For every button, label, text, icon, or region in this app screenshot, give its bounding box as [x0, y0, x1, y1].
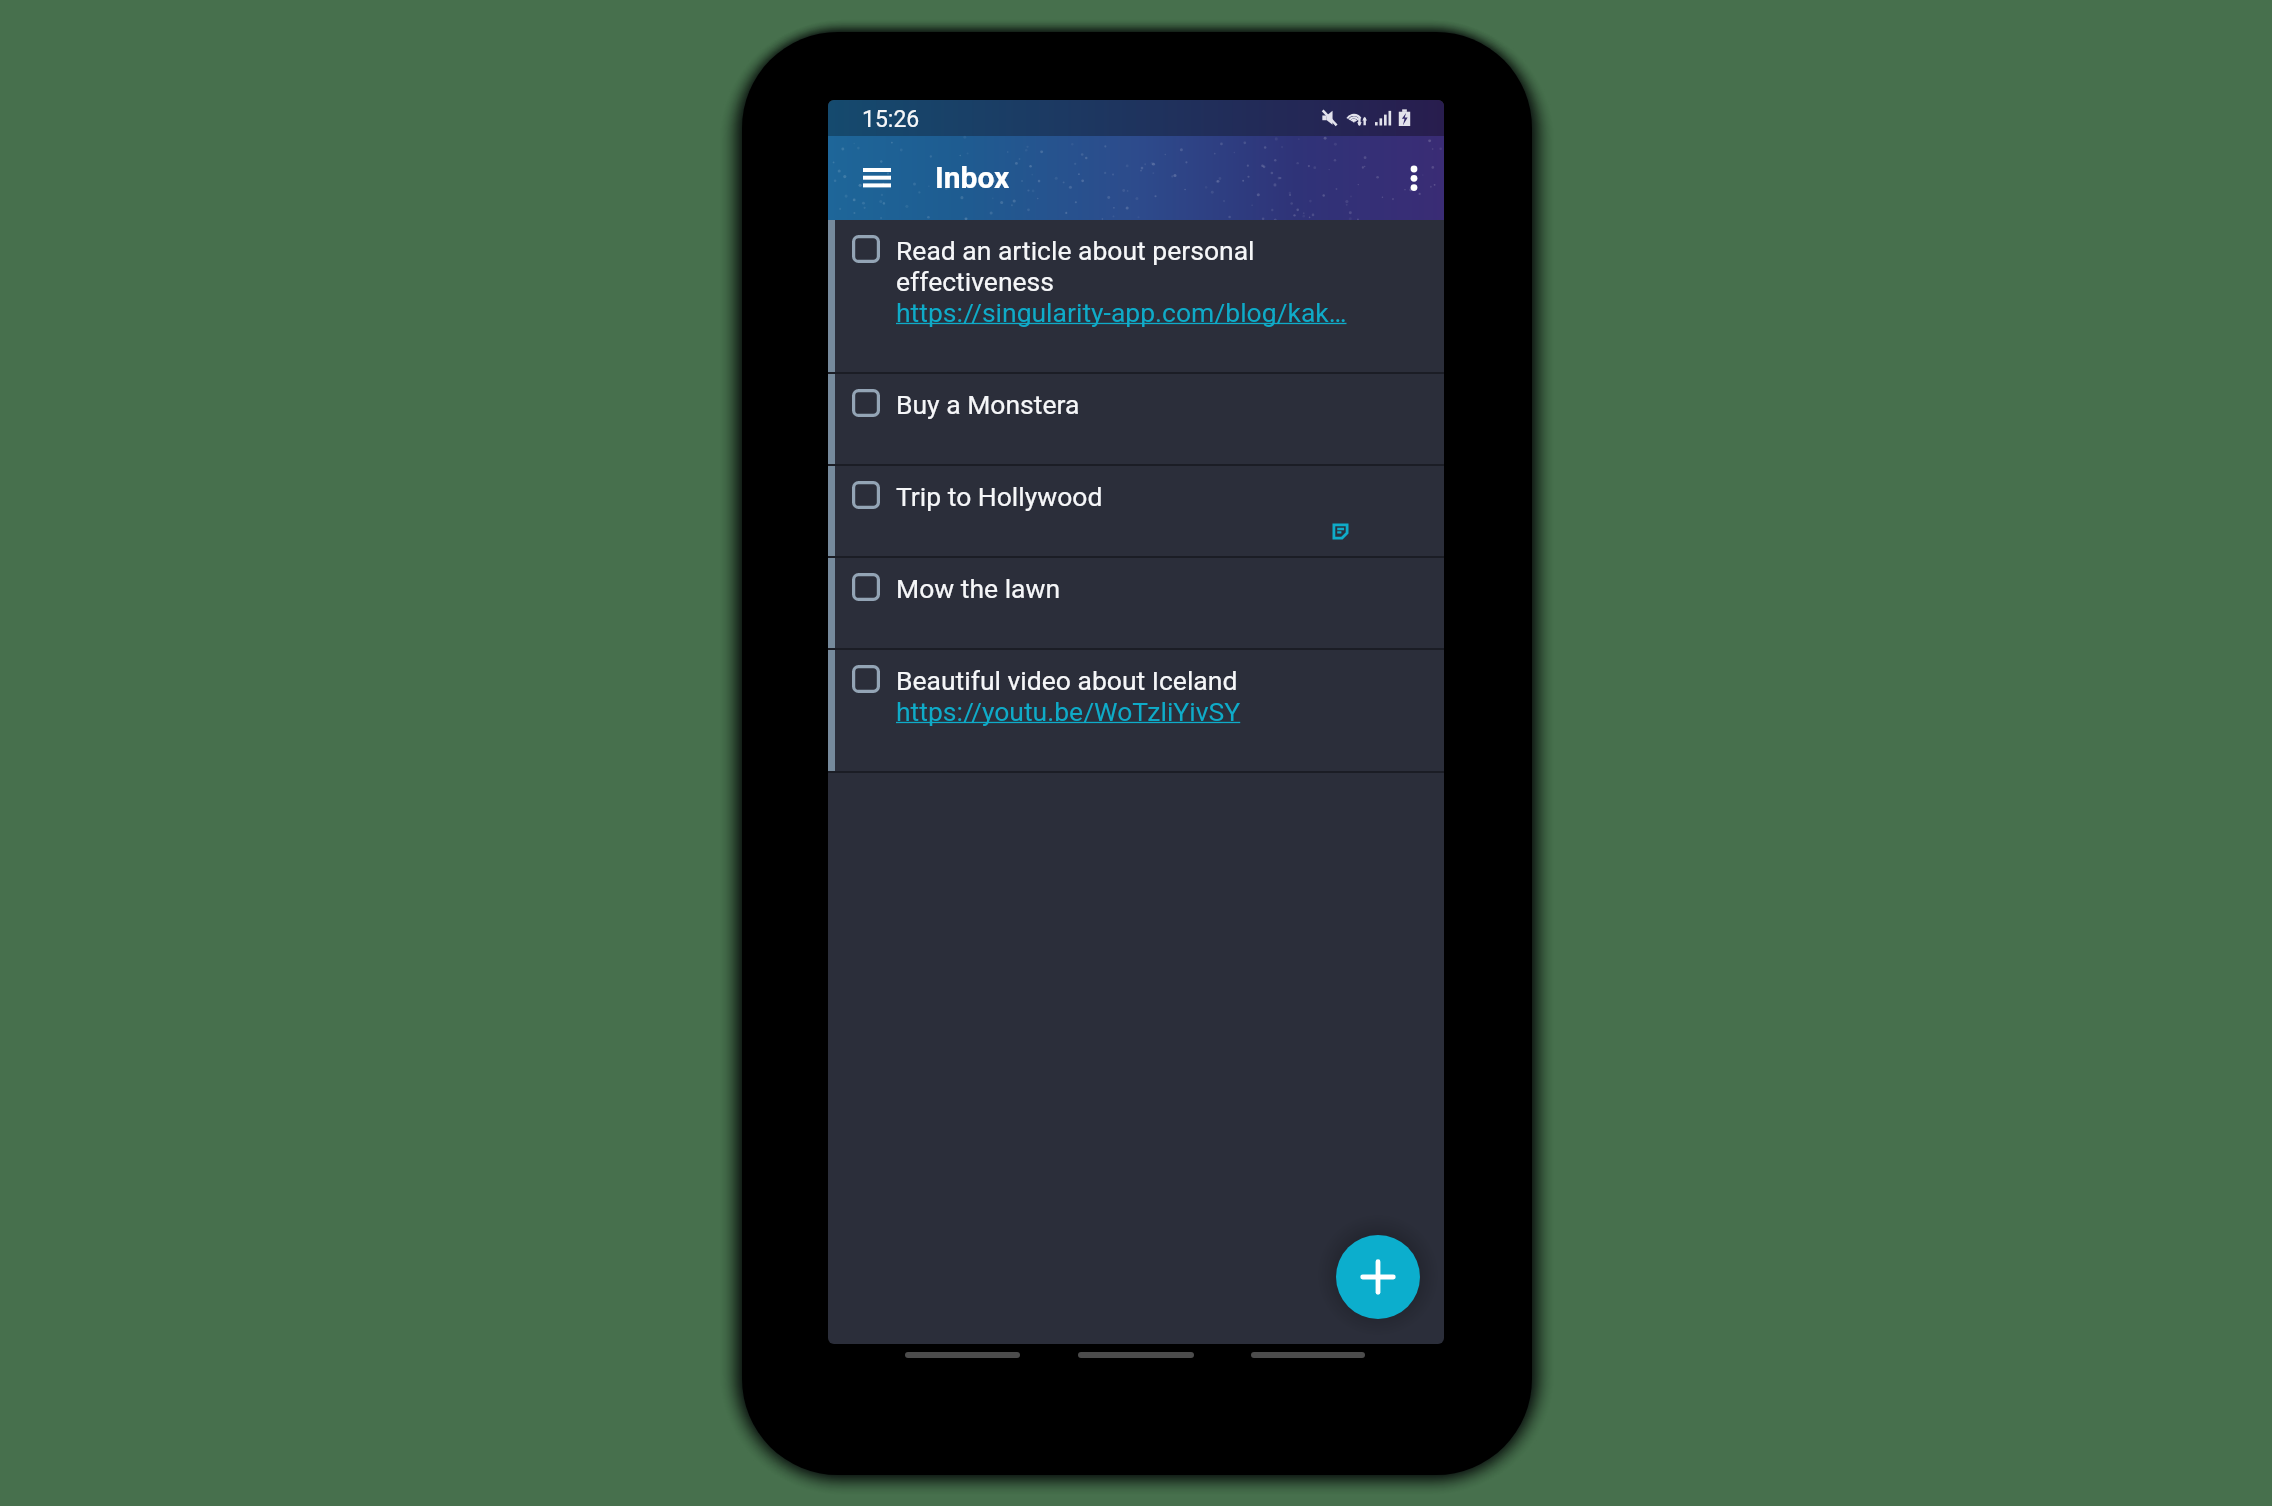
button[interactable]: More options: [1388, 152, 1440, 204]
staticText: Inbox: [935, 160, 1010, 195]
button[interactable]: Open navigation menu: [851, 152, 903, 204]
button[interactable]: Toggle complete: [828, 558, 1444, 648]
button[interactable]: Toggle complete: [828, 466, 1444, 556]
button[interactable]: Toggle complete: [828, 374, 1444, 464]
staticText: Mow the lawn: [896, 573, 1061, 604]
staticText: Buy a Monstera: [896, 389, 1080, 420]
button[interactable]: https://singularity-app.com/blog/kak…: [896, 297, 1347, 328]
button[interactable]: Toggle complete: [852, 481, 880, 509]
button[interactable]: Toggle complete: [828, 650, 1444, 771]
button[interactable]: Has note: [1333, 524, 1348, 539]
button[interactable]: Add task: [1336, 1235, 1420, 1319]
staticText: Read an article about personal effective…: [896, 235, 1255, 297]
button[interactable]: Navigation button: [1078, 1352, 1194, 1358]
button[interactable]: Toggle complete: [852, 573, 880, 601]
button[interactable]: Navigation button: [1251, 1352, 1365, 1358]
button[interactable]: https://youtu.be/WoTzliYivSY: [896, 696, 1241, 727]
button[interactable]: Navigation button: [905, 1352, 1020, 1358]
button[interactable]: Toggle complete: [828, 220, 1444, 372]
button[interactable]: Toggle complete: [852, 389, 880, 417]
staticText: Trip to Hollywood: [896, 481, 1103, 512]
button[interactable]: Toggle complete: [852, 235, 880, 263]
button[interactable]: Toggle complete: [852, 665, 880, 693]
staticText: 15:26: [862, 106, 920, 133]
staticText: Beautiful video about Iceland: [896, 665, 1238, 696]
